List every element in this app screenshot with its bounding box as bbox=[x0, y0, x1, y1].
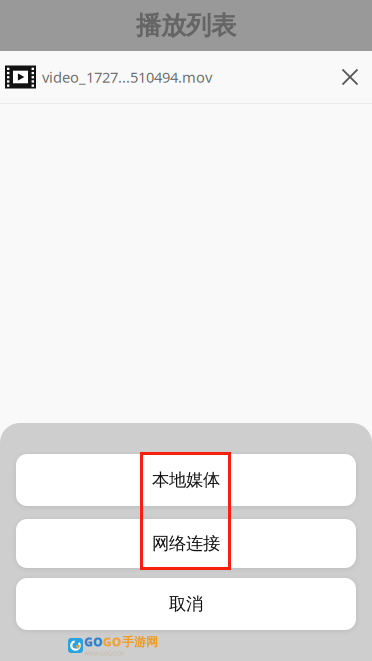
button[interactable]: video_1727...510494.mov bbox=[0, 51, 328, 103]
staticText: GO bbox=[84, 634, 103, 650]
staticText: 本地媒体 bbox=[152, 469, 220, 491]
staticText: GO bbox=[103, 634, 122, 650]
button[interactable]: 取消 bbox=[16, 578, 356, 630]
staticText: 播放列表 bbox=[136, 10, 236, 41]
staticText: 网络连接 bbox=[152, 533, 220, 554]
button[interactable]: 本地媒体 bbox=[16, 454, 356, 506]
button[interactable]: Remove video bbox=[328, 51, 372, 103]
staticText: 取消 bbox=[169, 593, 203, 615]
staticText: video_1727...510494.mov bbox=[42, 67, 212, 87]
staticText: WWW.GOGO.CN bbox=[84, 650, 124, 657]
staticText: 手游网 bbox=[122, 635, 158, 649]
button[interactable]: 网络连接 bbox=[16, 519, 356, 568]
